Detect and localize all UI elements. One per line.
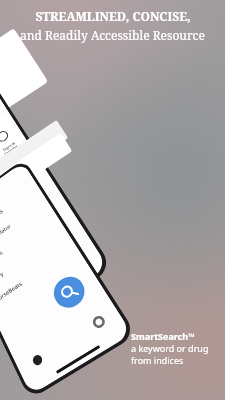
staticText: a keyword or drug [131,342,209,354]
button[interactable]: Box or Table Index [0,132,5,194]
staticText: Lab Values [0,249,4,271]
staticText: Signs & Samples [1,140,19,156]
staticText: from indices [131,354,184,366]
staticText: History [0,270,5,287]
staticText: SmartSearch™ [131,330,196,342]
button[interactable]: History [0,222,71,297]
staticText: STREAMLINED, CONCISE, [35,8,191,24]
button[interactable]: Signs & Samples [0,114,32,174]
button[interactable]: NurseBeats [0,238,82,314]
button[interactable]: Settings [86,310,110,334]
staticText: and Readily Accessible Resource [20,27,205,43]
button[interactable]: Search [48,271,90,314]
staticText: Drug Monographs [0,208,4,241]
button[interactable]: Favorites [26,348,48,372]
staticText: Dosage Calculator [0,222,12,256]
staticText: NurseBeats [0,280,24,304]
button[interactable]: Dosage Calculator [0,192,51,265]
button[interactable]: Drug Monographs [0,178,42,249]
button[interactable]: Lab Values [0,207,61,280]
